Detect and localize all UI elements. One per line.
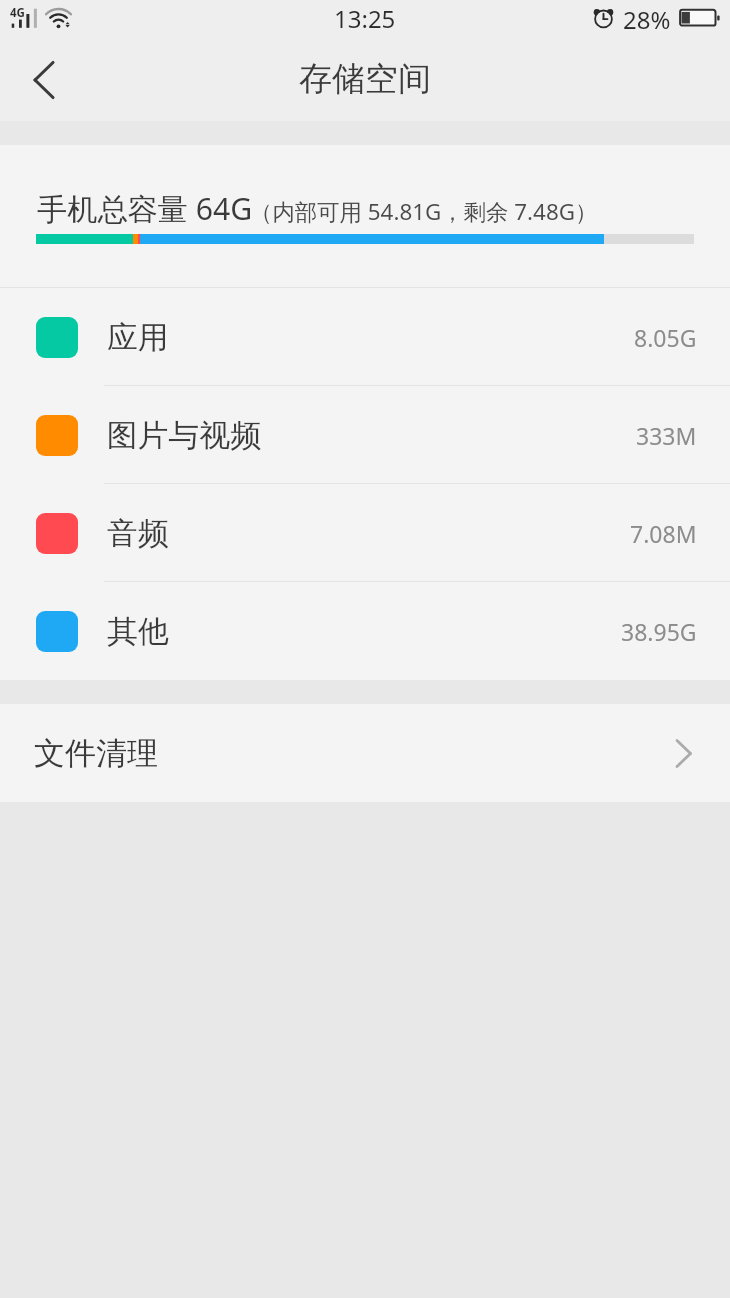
staticText: 文件清理 — [34, 734, 158, 773]
staticText: 7.08M — [630, 518, 697, 549]
button[interactable]: 文件清理 — [0, 704, 730, 802]
button[interactable]: 音频 — [0, 484, 730, 582]
staticText: 13:25 — [334, 2, 396, 35]
button[interactable]: 图片与视频 — [0, 386, 730, 484]
staticText: 333M — [636, 420, 697, 451]
staticText: 音频 — [107, 514, 169, 553]
button[interactable]: 其他 — [0, 582, 730, 680]
staticText: 28% — [623, 3, 671, 36]
staticText: 4G — [10, 5, 25, 21]
staticText: 应用 — [107, 318, 169, 357]
staticText: 手机总容量 64G — [37, 188, 253, 229]
staticText: 存储空间 — [299, 58, 431, 100]
button[interactable]: 应用 — [0, 288, 730, 386]
staticText: 38.95G — [621, 616, 697, 647]
button[interactable]: Back — [8, 46, 84, 121]
staticText: 其他 — [107, 612, 169, 651]
staticText: 8.05G — [634, 322, 697, 353]
staticText: （内部可用 54.81G，剩余 7.48G） — [250, 196, 598, 227]
staticText: 图片与视频 — [107, 416, 261, 455]
